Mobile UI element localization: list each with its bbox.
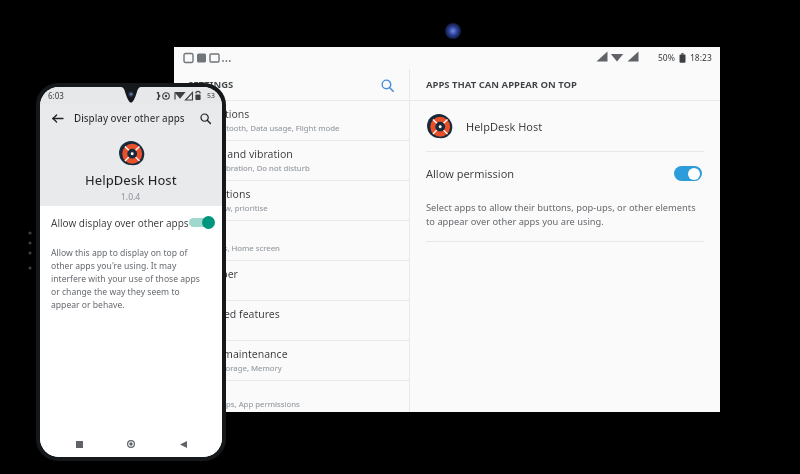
staticText: Sounds, Vibration, Do not disturb <box>188 163 310 174</box>
button[interactable]: Recents <box>66 431 92 457</box>
staticText: Block, allow, prioritise <box>188 203 268 214</box>
staticText: APPS THAT CAN APPEAR ON TOP <box>426 78 577 91</box>
button[interactable]: Connections <box>174 101 409 140</box>
button[interactable]: Home <box>118 431 144 457</box>
button[interactable]: Allow display over other apps <box>40 206 222 239</box>
staticText: HelpDesk Host <box>85 171 177 189</box>
button[interactable]: Allow permission <box>410 152 720 194</box>
staticText: Select apps to allow their buttons, pop-… <box>426 201 698 227</box>
button[interactable]: HelpDesk Host <box>410 101 720 151</box>
button[interactable]: Search settings <box>377 75 397 95</box>
staticText: Advanced features <box>188 307 280 321</box>
staticText: 1.0.4 <box>121 191 141 203</box>
staticText: Allow permission <box>426 166 515 181</box>
staticText: 18:23 <box>690 52 712 64</box>
button[interactable]: Display <box>174 221 409 260</box>
staticText: 53 <box>207 91 216 101</box>
staticText: Default apps, App permissions <box>188 399 300 410</box>
staticText: Allow this app to display on top of othe… <box>51 247 209 310</box>
staticText: Notifications <box>188 187 251 201</box>
button[interactable]: Sounds and vibration <box>174 141 409 180</box>
staticText: 50% <box>658 52 675 64</box>
staticText: 6:03 <box>48 90 64 101</box>
button[interactable]: Notifications <box>174 181 409 220</box>
button[interactable]: Apps <box>174 381 409 412</box>
staticText: Wallpaper <box>188 267 238 281</box>
staticText: Brightness, Home screen <box>188 243 280 254</box>
staticText: Display <box>188 227 224 241</box>
staticText: Wi-Fi, Bluetooth, Data usage, Flight mod… <box>188 123 340 134</box>
button[interactable]: Wallpaper <box>174 261 409 300</box>
button[interactable]: Advanced features <box>174 301 409 340</box>
button[interactable]: Device maintenance <box>174 341 409 380</box>
staticText: HelpDesk Host <box>466 119 543 134</box>
staticText: SETTINGS <box>188 78 234 91</box>
button[interactable]: Back <box>170 431 196 457</box>
staticText: Connections <box>188 107 250 121</box>
staticText: Device maintenance <box>188 347 288 361</box>
button[interactable]: Back <box>48 109 66 127</box>
button[interactable]: Search <box>196 109 214 127</box>
staticText: Battery, Storage, Memory <box>188 363 282 374</box>
staticText: Sounds and vibration <box>188 147 293 161</box>
staticText: Display over other apps <box>74 112 185 125</box>
staticText: Wallpaper <box>188 283 226 294</box>
staticText: Allow display over other apps <box>51 216 189 230</box>
